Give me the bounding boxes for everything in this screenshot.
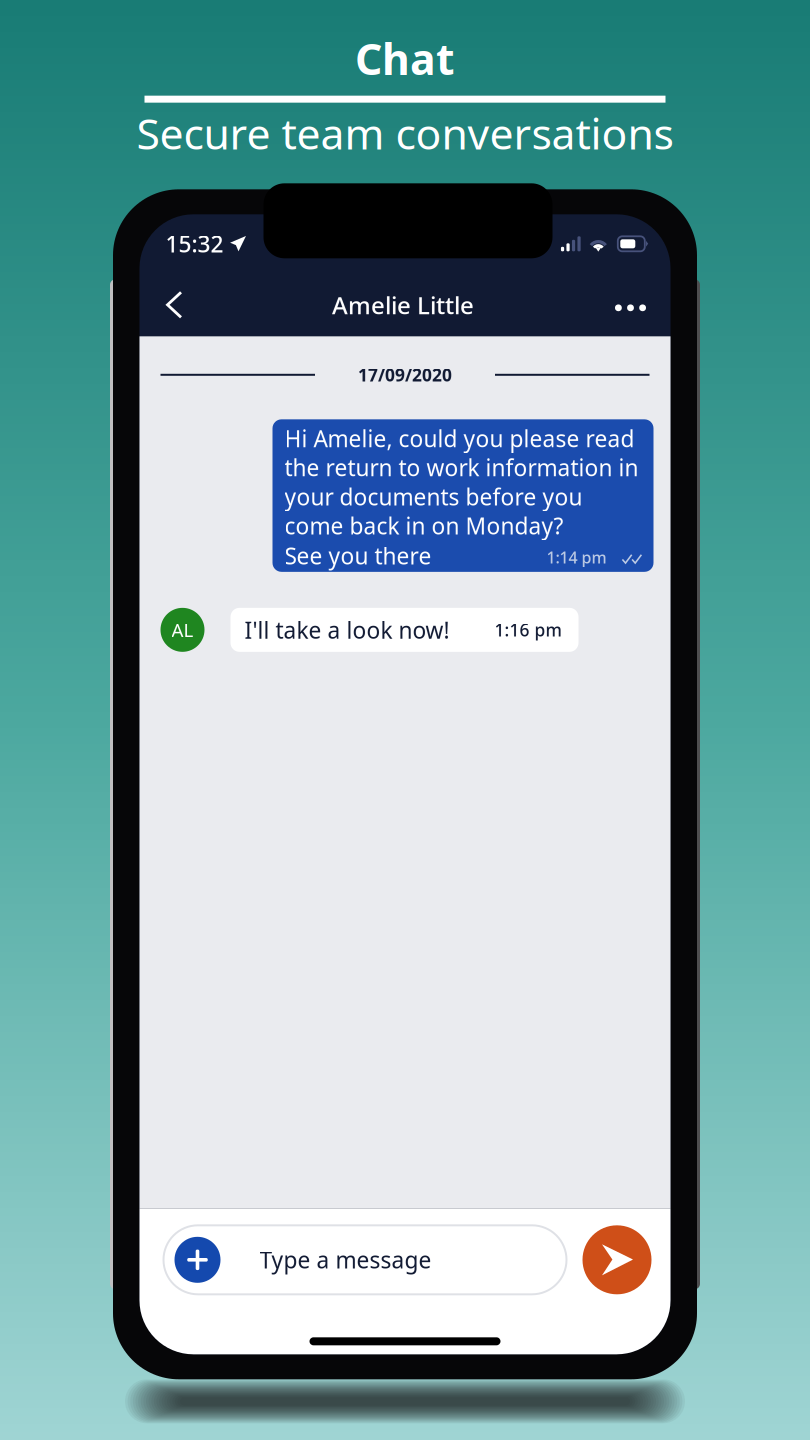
staticText: Chat bbox=[355, 30, 455, 87]
button[interactable]: Add attachment bbox=[174, 1237, 220, 1283]
staticText: Hi Amelie, could you please read the ret… bbox=[284, 423, 638, 541]
staticText: 15:32 bbox=[165, 229, 223, 259]
staticText: Type a message bbox=[259, 1245, 431, 1275]
staticText: 17/09/2020 bbox=[358, 363, 452, 386]
staticText: See you there bbox=[284, 541, 431, 571]
staticText: Secure team conversations bbox=[136, 105, 673, 161]
staticText: I'll take a look now! bbox=[244, 615, 449, 645]
staticText: 1:14 pm bbox=[546, 547, 606, 568]
button[interactable]: More options bbox=[604, 269, 660, 340]
staticText: 1:16 pm bbox=[494, 618, 561, 641]
button[interactable]: Back bbox=[147, 273, 201, 336]
staticText: AL bbox=[171, 617, 193, 642]
staticText: Amelie Little bbox=[332, 289, 474, 321]
button[interactable]: Send bbox=[582, 1225, 651, 1294]
